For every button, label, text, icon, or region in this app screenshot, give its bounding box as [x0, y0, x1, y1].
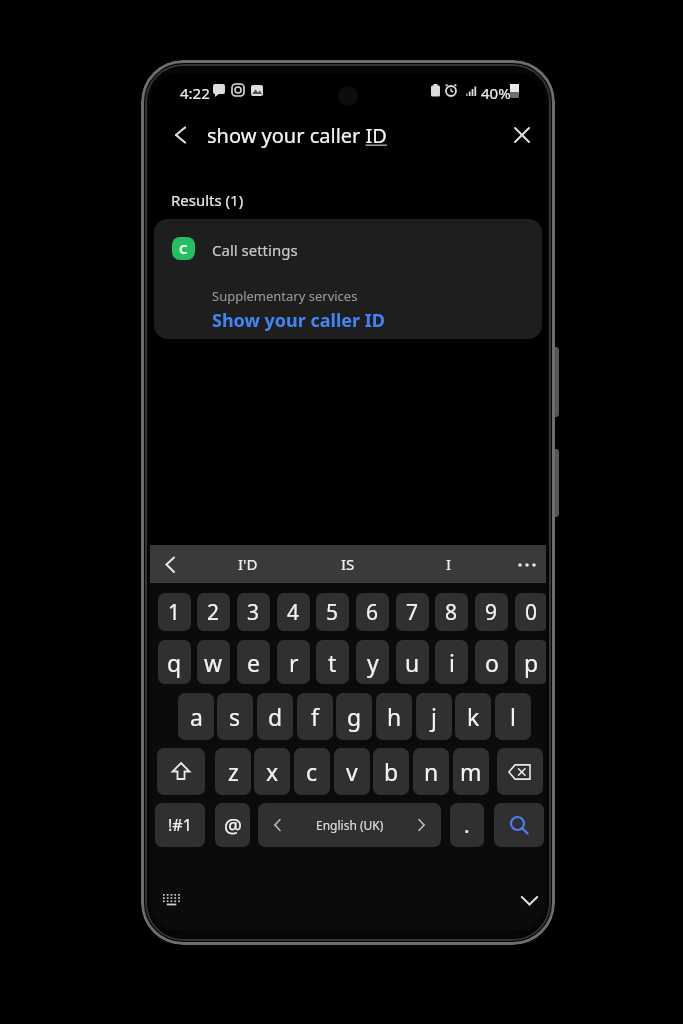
staticText: i	[449, 647, 455, 678]
button[interactable]: k	[455, 693, 491, 740]
staticText: English (UK)	[316, 817, 384, 833]
button[interactable]: m	[453, 748, 489, 795]
button[interactable]	[174, 127, 188, 143]
staticText: 2	[207, 598, 220, 627]
button[interactable]: English (UK)	[258, 803, 441, 847]
button[interactable]: v	[334, 748, 370, 795]
button[interactable]	[518, 563, 536, 567]
button[interactable]: p	[515, 640, 546, 684]
staticText: 4:22	[180, 83, 210, 103]
staticText: I'D	[238, 554, 258, 574]
button[interactable]: d	[257, 693, 293, 740]
button[interactable]: q	[158, 640, 191, 684]
button[interactable]: l	[495, 693, 531, 740]
staticText: m	[460, 756, 482, 787]
button[interactable]: 8	[435, 593, 468, 631]
staticText: Show your caller ID	[212, 308, 385, 333]
button[interactable]: 6	[356, 593, 389, 631]
staticText: 6	[366, 598, 379, 627]
button[interactable]: w	[197, 640, 230, 684]
staticText: u	[405, 647, 420, 678]
button[interactable]: o	[475, 640, 508, 684]
staticText: 8	[445, 598, 458, 627]
staticText: w	[204, 647, 223, 678]
staticText: 3	[247, 598, 260, 627]
staticText: show your caller ID	[207, 122, 387, 149]
button[interactable]	[521, 896, 538, 906]
button[interactable]: h	[376, 693, 412, 740]
staticText: Supplementary services	[212, 287, 358, 305]
button[interactable]: e	[237, 640, 270, 684]
button[interactable]: g	[336, 693, 372, 740]
staticText: g	[347, 701, 362, 732]
button[interactable]: a	[178, 693, 214, 740]
staticText: f	[311, 701, 319, 732]
button[interactable]	[494, 803, 544, 847]
button[interactable]: 9	[475, 593, 508, 631]
button[interactable]: y	[356, 640, 389, 684]
staticText: j	[431, 701, 437, 732]
staticText: k	[467, 701, 480, 732]
staticText: Call settings	[212, 240, 298, 260]
staticText: y	[367, 647, 379, 678]
button[interactable]: z	[215, 748, 251, 795]
button[interactable]	[165, 557, 175, 573]
staticText: h	[387, 701, 402, 732]
staticText: 40%	[481, 83, 511, 103]
staticText: .	[464, 811, 470, 840]
staticText: I	[446, 554, 452, 574]
button[interactable]	[497, 748, 543, 795]
button[interactable]: f	[297, 693, 333, 740]
staticText: r	[289, 647, 299, 678]
staticText: l	[510, 701, 516, 732]
button[interactable]: b	[373, 748, 409, 795]
staticText: s	[229, 701, 241, 732]
button[interactable]	[157, 748, 205, 795]
staticText: x	[266, 756, 279, 787]
button[interactable]: n	[413, 748, 449, 795]
button[interactable]: r	[277, 640, 310, 684]
staticText: 7	[406, 598, 419, 627]
staticText: n	[424, 756, 439, 787]
staticText: v	[346, 756, 358, 787]
button[interactable]: I	[411, 545, 487, 583]
button[interactable]	[514, 127, 530, 143]
button[interactable]: 5	[316, 593, 349, 631]
button[interactable]: 7	[396, 593, 429, 631]
staticText: z	[228, 756, 239, 787]
button[interactable]: c	[294, 748, 330, 795]
staticText: 9	[485, 598, 498, 627]
button[interactable]: u	[396, 640, 429, 684]
staticText: b	[384, 756, 399, 787]
staticText: q	[167, 647, 182, 678]
button[interactable]: 4	[277, 593, 310, 631]
button[interactable]: @	[215, 803, 250, 847]
staticText: IS	[341, 554, 355, 574]
staticText: d	[268, 701, 283, 732]
staticText: p	[524, 647, 539, 678]
button[interactable]: C	[154, 219, 542, 339]
button[interactable]: x	[254, 748, 290, 795]
staticText: o	[485, 647, 499, 678]
button[interactable]: j	[416, 693, 452, 740]
staticText: 1	[168, 598, 181, 627]
button[interactable]: 1	[158, 593, 191, 631]
button[interactable]	[163, 894, 181, 908]
button[interactable]: I'D	[210, 545, 286, 583]
staticText: C	[179, 240, 188, 258]
button[interactable]: i	[435, 640, 468, 684]
staticText: Results (1)	[171, 190, 244, 210]
button[interactable]: 0	[515, 593, 546, 631]
staticText: 4	[287, 598, 300, 627]
button[interactable]: 3	[237, 593, 270, 631]
staticText: t	[328, 647, 337, 678]
staticText: c	[306, 756, 318, 787]
staticText: 5	[326, 598, 339, 627]
button[interactable]: IS	[310, 545, 386, 583]
button[interactable]: s	[217, 693, 253, 740]
button[interactable]: t	[316, 640, 349, 684]
staticText: !#1	[168, 814, 192, 836]
button[interactable]: !#1	[155, 803, 205, 847]
button[interactable]: .	[450, 803, 484, 847]
button[interactable]: 2	[197, 593, 230, 631]
